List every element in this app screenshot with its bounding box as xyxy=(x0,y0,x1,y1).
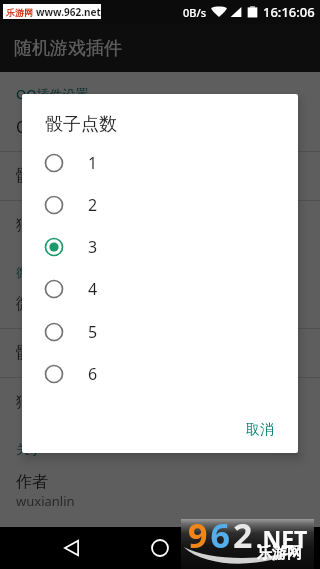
staticText: 骰子点数 xyxy=(45,113,117,136)
staticText: 骰子点数 xyxy=(16,343,80,363)
staticText: 骰子点数 xyxy=(16,166,80,186)
button[interactable]: 4 xyxy=(22,268,298,310)
staticText: 16:16:06 xyxy=(263,3,315,21)
button[interactable]: 骰子点数 xyxy=(0,152,320,200)
staticText: 1 xyxy=(88,152,98,174)
staticText: 3 xyxy=(88,236,98,258)
button[interactable]: 猜拳手势 xyxy=(0,201,320,249)
staticText: 作者 xyxy=(16,472,48,492)
staticText: 猜拳手势 xyxy=(16,215,80,235)
staticText: 2 xyxy=(88,194,98,216)
staticText: wuxianlin xyxy=(16,492,75,510)
button[interactable]: Home xyxy=(138,527,182,569)
button[interactable]: 2 xyxy=(22,184,298,226)
staticText: QQ个性签名 xyxy=(16,116,105,138)
staticText: .NET xyxy=(256,523,308,554)
staticText: 4 xyxy=(88,278,98,300)
staticText: 随机游戏插件 xyxy=(14,37,122,60)
staticText: 取消 xyxy=(246,421,274,439)
button[interactable]: 作者 xyxy=(0,457,320,517)
staticText: 962 xyxy=(188,512,256,558)
button[interactable]: Recents xyxy=(229,527,273,569)
staticText: 微信插件设置 xyxy=(16,264,94,280)
staticText: 猜拳手势 xyxy=(16,392,80,412)
staticText: www.962.net xyxy=(36,5,101,19)
staticText: 乐游网 xyxy=(6,7,33,18)
button[interactable]: Back xyxy=(49,527,93,569)
staticText: 乐游网 xyxy=(257,544,302,563)
button[interactable]: 5 xyxy=(22,311,298,353)
button[interactable]: 取消 xyxy=(228,407,298,447)
button[interactable]: 3 xyxy=(22,226,298,268)
staticText: 微信个性签名 xyxy=(16,294,112,314)
button[interactable]: 骰子点数 xyxy=(0,329,320,377)
staticText: 6 xyxy=(88,363,98,385)
button[interactable]: 微信个性签名 xyxy=(0,280,320,328)
staticText: 0B/s xyxy=(183,5,207,20)
button[interactable]: QQ个性签名 xyxy=(0,103,320,151)
staticText: 关于 xyxy=(16,441,42,457)
staticText: 5 xyxy=(88,321,98,343)
button[interactable]: 猜拳手势 xyxy=(0,378,320,426)
button[interactable]: 1 xyxy=(22,142,298,184)
staticText: QQ插件设置 xyxy=(16,85,89,103)
button[interactable]: 6 xyxy=(22,353,298,395)
